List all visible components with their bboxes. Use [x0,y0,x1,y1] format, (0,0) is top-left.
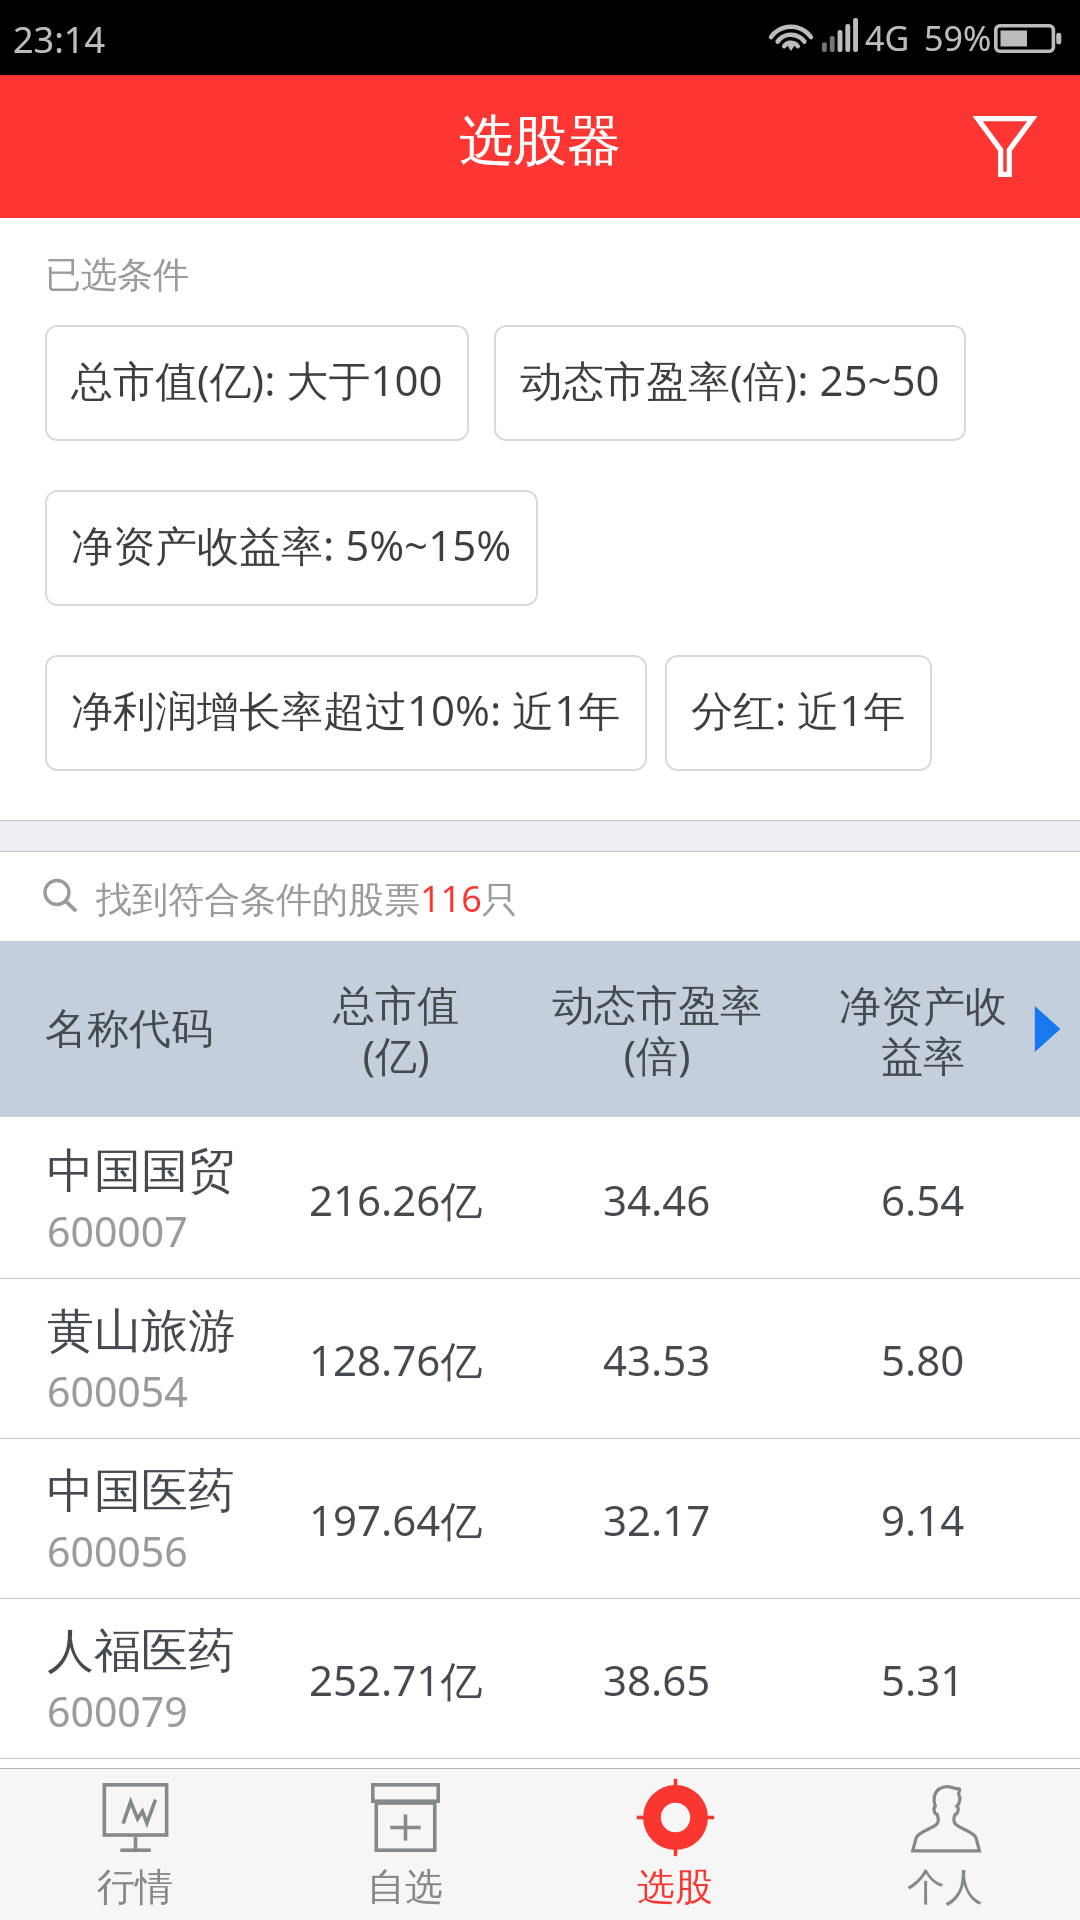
staticText: 动态市盈率(倍): 25~50 [520,351,940,408]
staticText: 4G [865,15,910,61]
staticText: 600079 [47,1683,188,1739]
button[interactable]: 中国医药 [0,1439,1080,1599]
button[interactable]: 分红: 近1年 [665,655,932,771]
staticText: 分红: 近1年 [691,681,906,738]
button[interactable]: 人福医药 [0,1599,1080,1759]
staticText: 中国医药 [47,1462,235,1521]
button[interactable]: 行情 [0,1768,270,1920]
staticText: 5.31 [881,1651,965,1708]
staticText: 600007 [47,1203,188,1259]
button[interactable]: More columns [1014,997,1078,1061]
staticText: 600056 [47,1523,188,1579]
staticText: 动态市盈率 (倍) [552,980,762,1084]
staticText: 23:14 [13,15,106,64]
staticText: 总市值 (亿) [333,980,459,1084]
button[interactable]: 动态市盈率(倍): 25~50 [494,325,966,441]
staticText: 人福医药 [47,1622,235,1681]
button[interactable]: 净利润增长率超过10%: 近1年 [45,655,647,771]
button[interactable]: 选股 [540,1768,810,1920]
staticText: 选股器 [459,107,621,175]
staticText: 中国国贸 [47,1142,235,1201]
staticText: 个人 [907,1863,983,1911]
staticText: 6.54 [881,1171,965,1228]
staticText: 128.76亿 [309,1331,483,1388]
button[interactable]: 净资产收益率: 5%~15% [45,490,538,606]
staticText: 找到符合条件的股票116只 [96,874,518,923]
staticText: 行情 [97,1863,173,1911]
staticText: 总市值(亿): 大于100 [71,351,443,408]
staticText: 9.14 [881,1491,965,1548]
button[interactable]: 黄山旅游 [0,1279,1080,1439]
button[interactable]: 中国国贸 [0,1119,1080,1279]
staticText: 38.65 [603,1651,711,1708]
button[interactable]: 总市值(亿): 大于100 [45,325,469,441]
staticText: 净资产收 益率 [839,981,1007,1083]
staticText: 净资产收益率: 5%~15% [71,516,512,573]
button[interactable]: 个人 [810,1768,1080,1920]
button[interactable]: Filter [963,104,1047,188]
staticText: 黄山旅游 [47,1302,235,1361]
button[interactable]: 自选 [270,1768,540,1920]
staticText: 252.71亿 [309,1651,483,1708]
staticText: 5.80 [881,1331,965,1388]
staticText: 600054 [47,1363,188,1419]
staticText: 34.46 [603,1171,711,1228]
button[interactable]: 找到符合条件的股票116只 [0,852,1080,941]
staticText: 已选条件 [45,252,189,297]
staticText: 选股 [637,1863,713,1911]
staticText: 59% [924,15,992,61]
staticText: 32.17 [603,1491,711,1548]
staticText: 216.26亿 [309,1171,483,1228]
staticText: 净利润增长率超过10%: 近1年 [71,681,621,738]
staticText: 自选 [367,1863,443,1911]
staticText: 197.64亿 [309,1491,483,1548]
staticText: 43.53 [603,1331,711,1388]
staticText: 名称代码 [45,1003,213,1056]
